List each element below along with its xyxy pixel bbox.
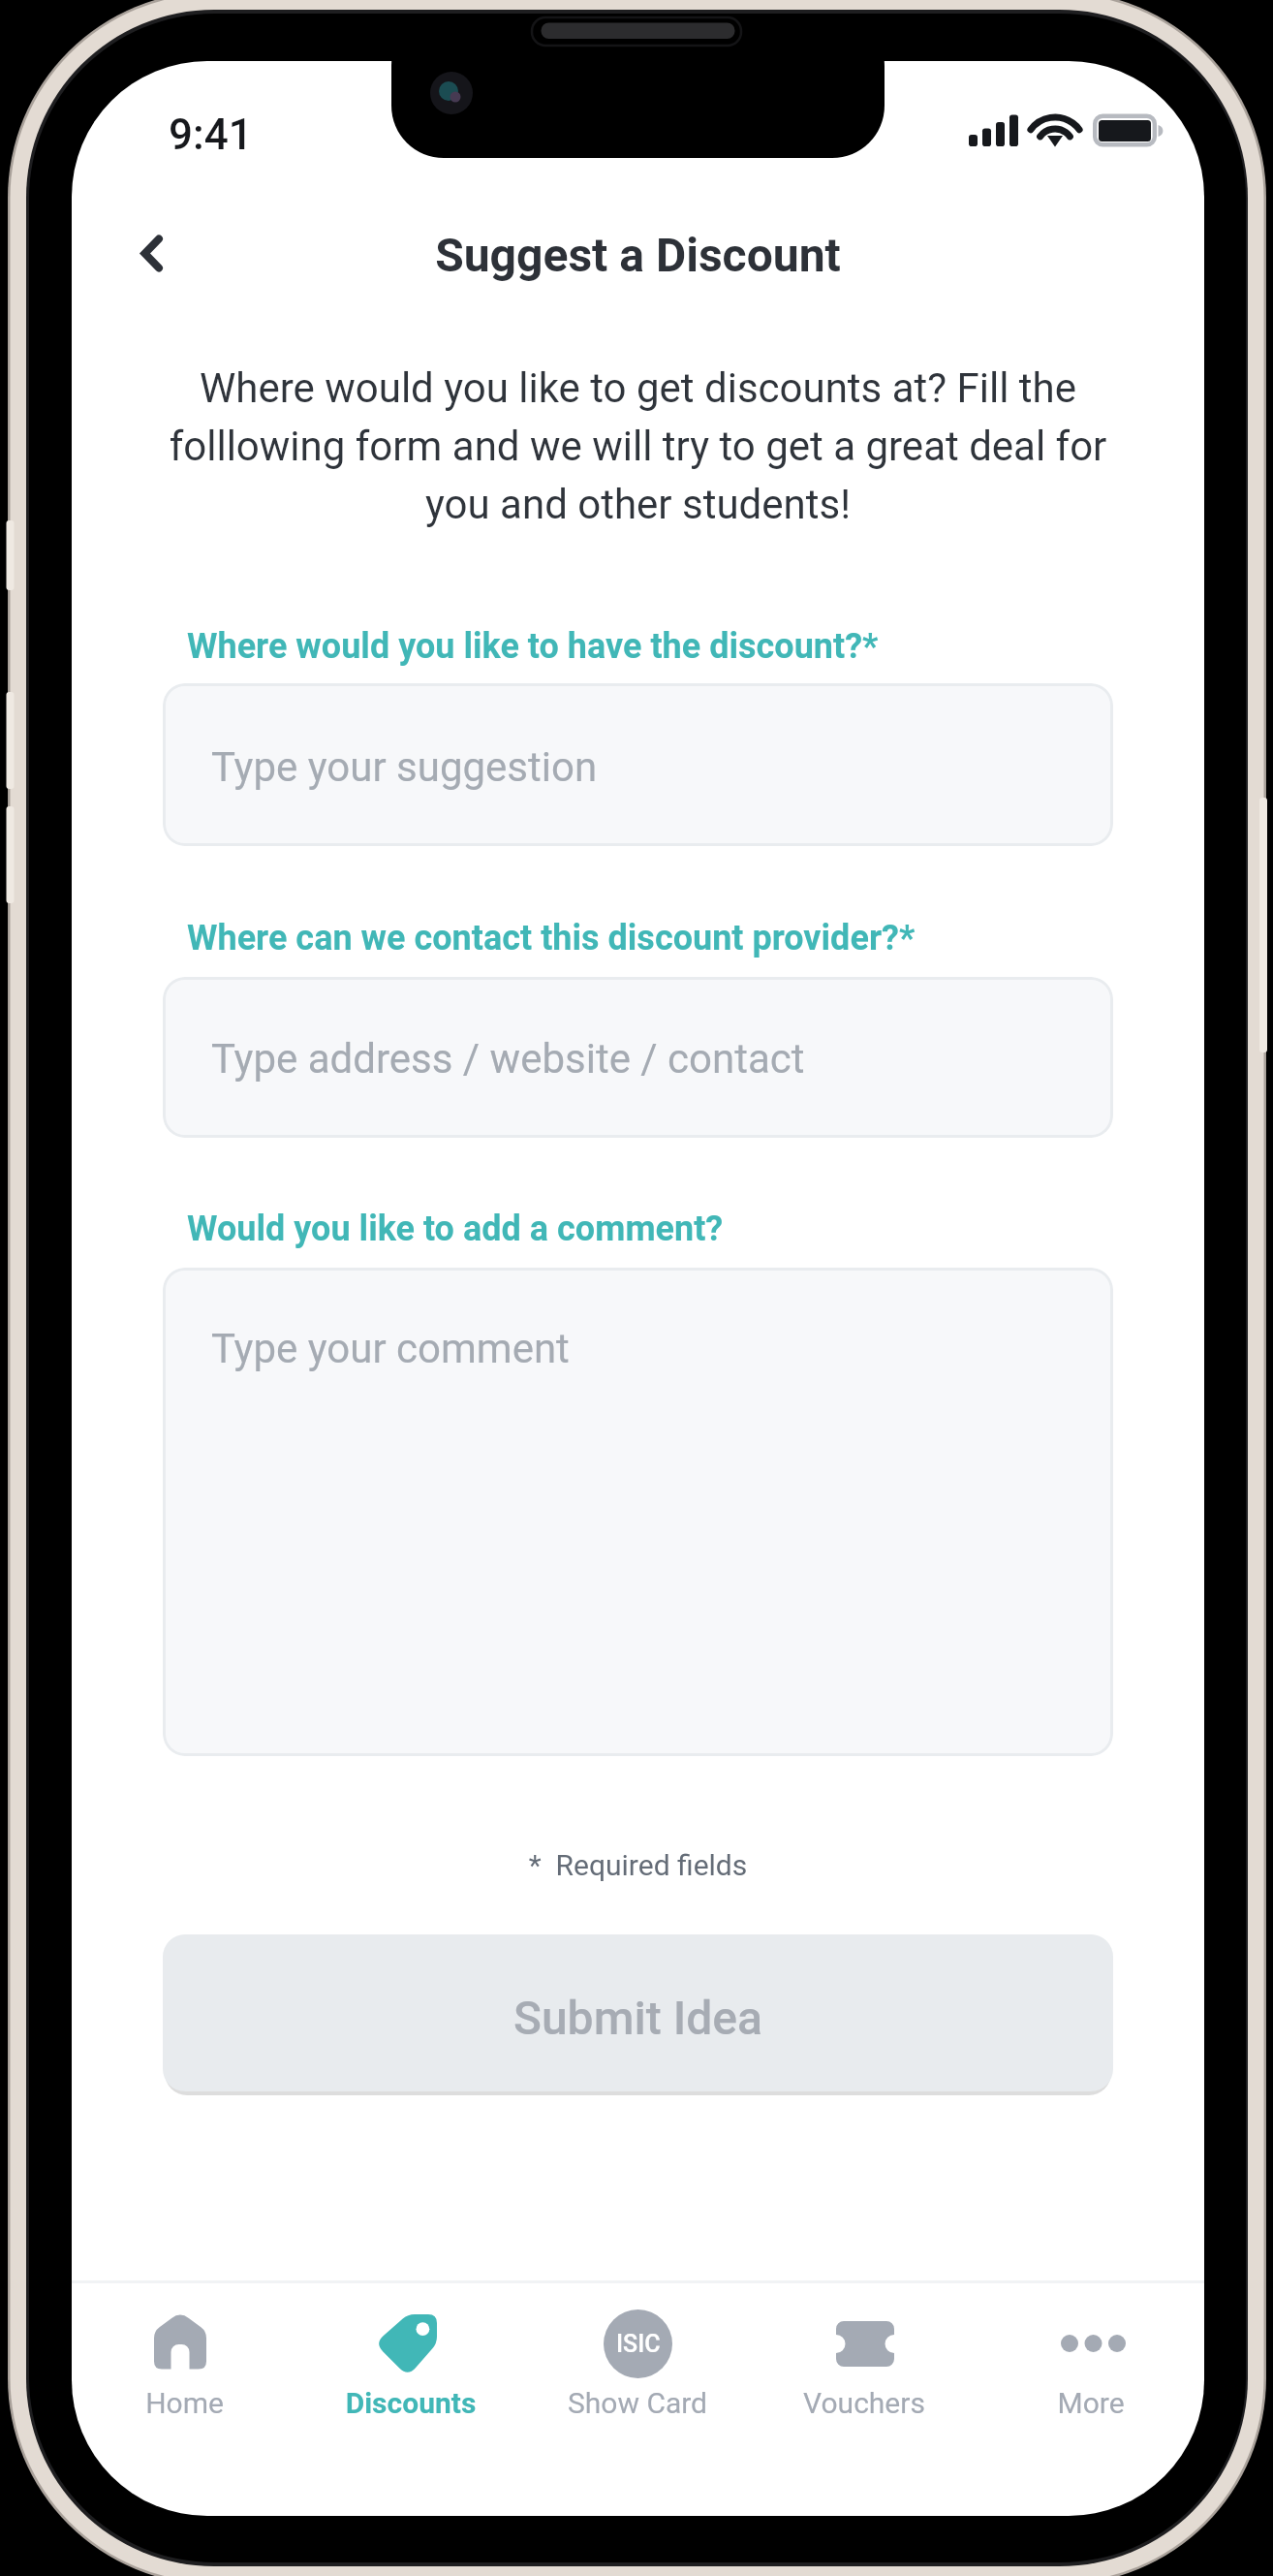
button[interactable] bbox=[163, 1268, 1113, 1756]
staticText: 9:41 bbox=[169, 110, 253, 160]
staticText: Type your suggestion bbox=[211, 743, 598, 791]
button[interactable]: Home bbox=[72, 2283, 297, 2516]
button[interactable]: Back bbox=[116, 213, 198, 295]
staticText: Submit Idea bbox=[72, 1991, 1204, 2045]
staticText: Discounts bbox=[297, 2386, 524, 2420]
staticText: More bbox=[978, 2386, 1204, 2420]
staticText: Suggest a Discount bbox=[72, 228, 1204, 282]
staticText: Show Card bbox=[524, 2386, 751, 2420]
button[interactable]: More bbox=[978, 2283, 1204, 2516]
button[interactable] bbox=[163, 1934, 1113, 2091]
staticText: Where can we contact this discount provi… bbox=[187, 918, 916, 958]
staticText: Would you like to add a comment? bbox=[187, 1209, 724, 1249]
staticText: Where would you like to have the discoun… bbox=[187, 626, 879, 667]
staticText: Type address / website / contact bbox=[211, 1035, 805, 1083]
button[interactable] bbox=[163, 977, 1113, 1138]
staticText: Where would you like to get discounts at… bbox=[163, 364, 1113, 528]
button[interactable]: Discounts bbox=[297, 2283, 524, 2516]
staticText: Home bbox=[72, 2386, 297, 2420]
staticText: Vouchers bbox=[751, 2386, 978, 2420]
button[interactable] bbox=[163, 683, 1113, 846]
button[interactable]: Vouchers bbox=[751, 2283, 978, 2516]
staticText: ISIC bbox=[616, 2330, 661, 2358]
staticText: * Required fields bbox=[72, 1848, 1204, 1882]
button[interactable]: ISIC bbox=[524, 2283, 751, 2516]
staticText: Type your comment bbox=[211, 1325, 570, 1372]
